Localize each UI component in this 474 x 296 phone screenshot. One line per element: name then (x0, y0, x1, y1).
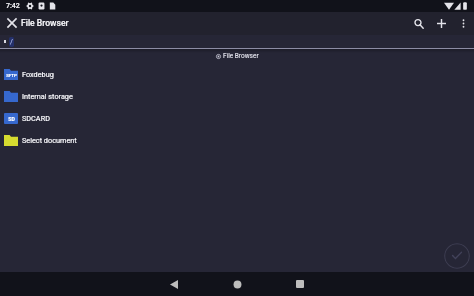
button[interactable]: SFTP (0, 63, 474, 85)
button[interactable]: Select document (0, 129, 474, 151)
staticText: Select document (22, 136, 77, 145)
button[interactable]: Close (0, 12, 22, 35)
button[interactable]: Internal storage (0, 85, 474, 107)
staticText: SD (8, 116, 15, 122)
staticText: SFTP (6, 73, 17, 78)
button[interactable]: Search (408, 12, 430, 35)
staticText: Foxdebug (22, 70, 54, 79)
button[interactable]: Add (430, 12, 452, 35)
staticText: 7:42 (6, 2, 20, 10)
button[interactable]: Back (159, 272, 189, 296)
button[interactable]: SD (0, 107, 474, 129)
staticText: SDCARD (22, 114, 50, 123)
staticText: File Browser (21, 18, 69, 28)
staticText: Internal storage (22, 92, 73, 101)
button[interactable]: More options (452, 12, 474, 35)
button[interactable]: / (9, 37, 14, 47)
button[interactable]: Recents (285, 272, 315, 296)
button[interactable]: Home (222, 272, 252, 296)
staticText: File Browser (223, 52, 259, 60)
button[interactable]: Confirm (444, 243, 470, 269)
staticText: / (10, 38, 13, 46)
